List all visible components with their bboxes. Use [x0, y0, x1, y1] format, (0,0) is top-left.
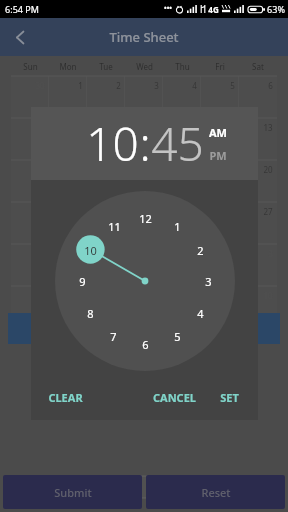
- button[interactable]: 24: [125, 202, 163, 244]
- staticText: 1: [78, 80, 83, 91]
- button[interactable]: 23: [87, 202, 125, 244]
- button[interactable]: 29: [49, 244, 87, 286]
- button[interactable]: 1: [166, 218, 188, 234]
- staticText: Fri: [215, 61, 225, 72]
- button[interactable]: 12: [134, 210, 156, 226]
- staticText: 3: [205, 274, 212, 289]
- button[interactable]: 1: [49, 76, 87, 118]
- staticText: Time Sheet: [109, 28, 179, 46]
- staticText: Tue: [99, 61, 113, 72]
- staticText: 2: [197, 243, 204, 258]
- staticText: 6:54 PM: [5, 3, 39, 15]
- button[interactable]: 8: [79, 305, 101, 321]
- staticText: 10: [84, 243, 97, 258]
- button[interactable]: 9: [71, 273, 93, 289]
- staticText: Mon: [59, 61, 77, 72]
- staticText: 9: [116, 122, 121, 133]
- button[interactable]: 2: [201, 244, 239, 286]
- button[interactable]: AM: [208, 124, 228, 141]
- button[interactable]: 27: [239, 202, 277, 244]
- button[interactable]: Reset: [146, 475, 285, 509]
- staticText: 5: [174, 329, 181, 344]
- staticText: 63%: [267, 3, 285, 15]
- button[interactable]: 19: [201, 160, 239, 202]
- button[interactable]: 13: [239, 118, 277, 160]
- button[interactable]: 31: [125, 244, 163, 286]
- button[interactable]: 17: [125, 160, 163, 202]
- button[interactable]: 2: [189, 242, 211, 258]
- button[interactable]: 5: [166, 328, 188, 344]
- button[interactable]: 18: [163, 160, 201, 202]
- button[interactable]: 5: [49, 286, 87, 328]
- button[interactable]: 10: [79, 242, 101, 258]
- button[interactable]: 3: [197, 273, 219, 289]
- staticText: 12: [139, 211, 152, 226]
- button[interactable]: 28: [11, 244, 49, 286]
- staticText: 8: [87, 306, 94, 321]
- button[interactable]: 6: [239, 76, 277, 118]
- button[interactable]: 9: [87, 118, 125, 160]
- staticText: Sat: [252, 61, 264, 72]
- button[interactable]: 11: [103, 218, 125, 234]
- staticText: 4G: [208, 4, 219, 15]
- button[interactable]: Back: [0, 18, 40, 56]
- button[interactable]: 10: [86, 112, 139, 175]
- button[interactable]: 22: [49, 202, 87, 244]
- button[interactable]: 12: [201, 118, 239, 160]
- button[interactable]: 3: [125, 76, 163, 118]
- button[interactable]: 45: [151, 112, 204, 175]
- button[interactable]: 26: [201, 202, 239, 244]
- staticText: AM: [209, 125, 227, 140]
- button[interactable]: 6: [87, 286, 125, 328]
- button[interactable]: 15: [49, 160, 87, 202]
- staticText: •••: [164, 4, 172, 14]
- button[interactable]: [88, 476, 200, 498]
- button[interactable]: 11: [163, 118, 201, 160]
- button[interactable]: 9: [201, 286, 239, 328]
- button[interactable]: 8: [163, 286, 201, 328]
- button[interactable]: 14: [11, 160, 49, 202]
- button[interactable]: 21: [11, 202, 49, 244]
- staticText: 11: [108, 219, 121, 234]
- button[interactable]: 4: [189, 305, 211, 321]
- button[interactable]: Submit: [3, 475, 142, 509]
- button[interactable]: 7: [11, 118, 49, 160]
- button[interactable]: 25: [163, 202, 201, 244]
- button[interactable]: 30: [87, 244, 125, 286]
- staticText: 1: [174, 219, 181, 234]
- button[interactable]: 4: [11, 286, 49, 328]
- staticText: :: [139, 112, 151, 175]
- staticText: 24: [149, 206, 159, 217]
- button[interactable]: CLEAR: [43, 385, 88, 410]
- button[interactable]: 10: [125, 118, 163, 160]
- button[interactable]: 4: [163, 76, 201, 118]
- button[interactable]: 5: [201, 76, 239, 118]
- button[interactable]: 2: [87, 76, 125, 118]
- staticText: 20: [263, 164, 273, 175]
- button[interactable]: SET: [215, 385, 244, 410]
- button[interactable]: 10: [239, 286, 277, 328]
- button[interactable]: 7: [102, 328, 124, 344]
- button[interactable]: 20: [239, 160, 277, 202]
- staticText: 7: [110, 329, 117, 344]
- staticText: 5: [230, 80, 235, 91]
- button[interactable]: PM: [208, 147, 228, 164]
- button[interactable]: CANCEL: [148, 385, 201, 410]
- button[interactable]: 16: [87, 160, 125, 202]
- button[interactable]: 1: [163, 244, 201, 286]
- button[interactable]: 3: [239, 244, 277, 286]
- button[interactable]: 6: [134, 336, 156, 352]
- staticText: 9: [79, 274, 86, 289]
